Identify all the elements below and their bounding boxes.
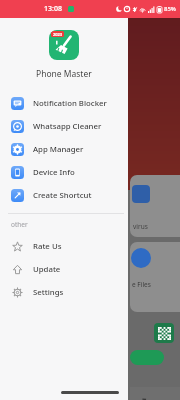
staticText: Phone Master <box>36 68 92 80</box>
button[interactable]: Create Shortcut <box>0 184 128 207</box>
staticText: Device Info <box>33 167 75 178</box>
button[interactable]: Update <box>0 258 128 281</box>
button[interactable]: Device Info <box>0 161 128 184</box>
staticText: Create Shortcut <box>33 190 92 201</box>
staticText: 2023 <box>53 32 63 37</box>
staticText: 85% <box>164 5 176 13</box>
staticText: other <box>11 220 28 229</box>
staticText: e Files <box>132 280 151 289</box>
button[interactable]: App Manager <box>0 138 128 161</box>
button[interactable]: Whatsapp Cleaner <box>0 115 128 138</box>
staticText: Update <box>33 264 61 275</box>
staticText: Notification Blocker <box>33 98 107 109</box>
staticText: Settings <box>33 287 64 298</box>
staticText: Whatsapp Cleaner <box>33 121 102 132</box>
staticText: App Manager <box>33 144 84 155</box>
button[interactable]: Rate Us <box>0 235 128 258</box>
button[interactable]: Notification Blocker <box>0 92 128 115</box>
staticText: virus <box>133 222 148 231</box>
staticText: Rate Us <box>33 241 62 252</box>
button[interactable]: Settings <box>0 281 128 304</box>
staticText: 13:08 <box>44 4 62 14</box>
